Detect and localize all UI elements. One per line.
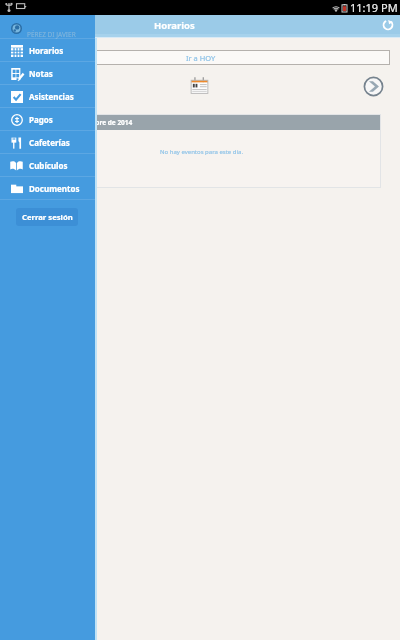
staticText: Horarios [154, 19, 195, 32]
staticText: Cafeterías [29, 137, 70, 148]
button[interactable]: Cubículos [0, 154, 95, 176]
button[interactable]: Documentos [0, 177, 95, 199]
staticText: Notas [29, 68, 53, 79]
staticText: PÉREZ DI JAVIER [27, 30, 76, 39]
staticText: Cubículos [29, 160, 68, 171]
staticText: Horarios [29, 45, 64, 56]
staticText: Documentos [29, 183, 80, 194]
button[interactable]: Pick date [190, 77, 209, 95]
staticText: Miércoles 24 de Septiembre de 2014 [17, 118, 133, 127]
staticText: Ir a HOY [186, 53, 216, 63]
button[interactable]: Asistencias [0, 85, 95, 107]
button[interactable]: Cafeterías [0, 131, 95, 153]
button[interactable]: Pagos [0, 108, 95, 130]
staticText: Asistencias [29, 91, 74, 102]
staticText: Pagos [29, 114, 53, 125]
staticText: Cerrar sesión [22, 212, 73, 222]
button[interactable]: Ir a HOY [11, 50, 390, 65]
button[interactable]: Notas [0, 62, 95, 84]
button[interactable]: Cerrar sesión [16, 208, 78, 226]
staticText: No hay eventos para este día. [160, 148, 243, 156]
button[interactable]: Next day [363, 76, 384, 97]
button[interactable]: Refresh [379, 16, 397, 34]
button[interactable]: Horarios [0, 39, 95, 61]
staticText: 11:19 PM [350, 0, 398, 15]
